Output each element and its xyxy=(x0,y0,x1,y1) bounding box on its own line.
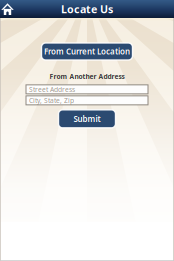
staticText: Submit xyxy=(73,113,100,124)
button[interactable]: Submit xyxy=(58,110,115,128)
staticText: Street Address xyxy=(29,85,75,94)
button[interactable]: From Current Location xyxy=(41,43,132,60)
staticText: City, State, Zip xyxy=(29,96,74,105)
staticText: Locate Us xyxy=(61,2,113,16)
button[interactable]: Home xyxy=(0,0,15,18)
staticText: From Another Address xyxy=(49,72,124,81)
staticText: From Current Location xyxy=(44,46,130,57)
